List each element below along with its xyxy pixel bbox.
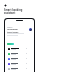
button[interactable] [5,56,34,61]
button[interactable] [7,43,14,45]
staticText: Smart booking assistant [4,8,23,14]
button[interactable]: AI sparkle [4,4,7,7]
button[interactable] [5,46,34,51]
button[interactable] [5,66,34,71]
staticText: Upcoming trips today [7,28,19,33]
button[interactable] [5,61,34,66]
staticText: TODAY [7,26,13,28]
button[interactable]: Profile [29,28,32,31]
button[interactable] [5,51,34,56]
